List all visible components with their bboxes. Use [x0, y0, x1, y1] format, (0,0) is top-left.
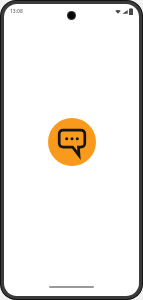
- button[interactable]: Messages app icon: [48, 118, 96, 166]
- staticText: 13:08: [10, 8, 23, 15]
